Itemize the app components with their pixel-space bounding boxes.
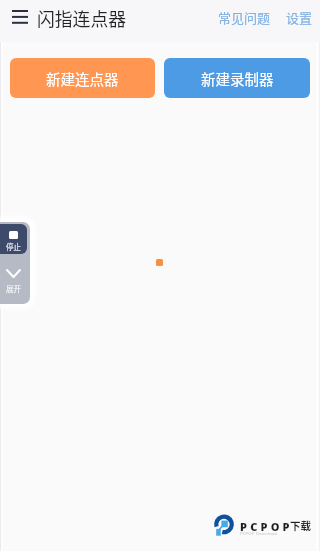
staticText: 常见问题 — [218, 8, 271, 27]
staticText: 展开 — [6, 283, 21, 294]
staticText: 新建录制器 — [201, 68, 274, 89]
staticText: PCPOP Download — [240, 531, 278, 537]
button[interactable]: 展开 — [0, 254, 27, 304]
button[interactable]: 常见问题 — [214, 0, 275, 35]
button[interactable]: 停止 — [0, 224, 27, 254]
staticText: 下载 — [290, 518, 311, 533]
button[interactable]: 新建录制器 — [164, 58, 310, 98]
staticText: PCPOP — [240, 519, 293, 534]
button[interactable]: 新建连点器 — [10, 58, 155, 98]
staticText: 设置 — [286, 8, 313, 27]
staticText: 闪指连点器 — [37, 5, 126, 31]
staticText: 新建连点器 — [46, 68, 119, 89]
button[interactable]: Menu — [0, 0, 38, 38]
staticText: 停止 — [6, 241, 21, 252]
button[interactable]: 设置 — [282, 0, 320, 35]
